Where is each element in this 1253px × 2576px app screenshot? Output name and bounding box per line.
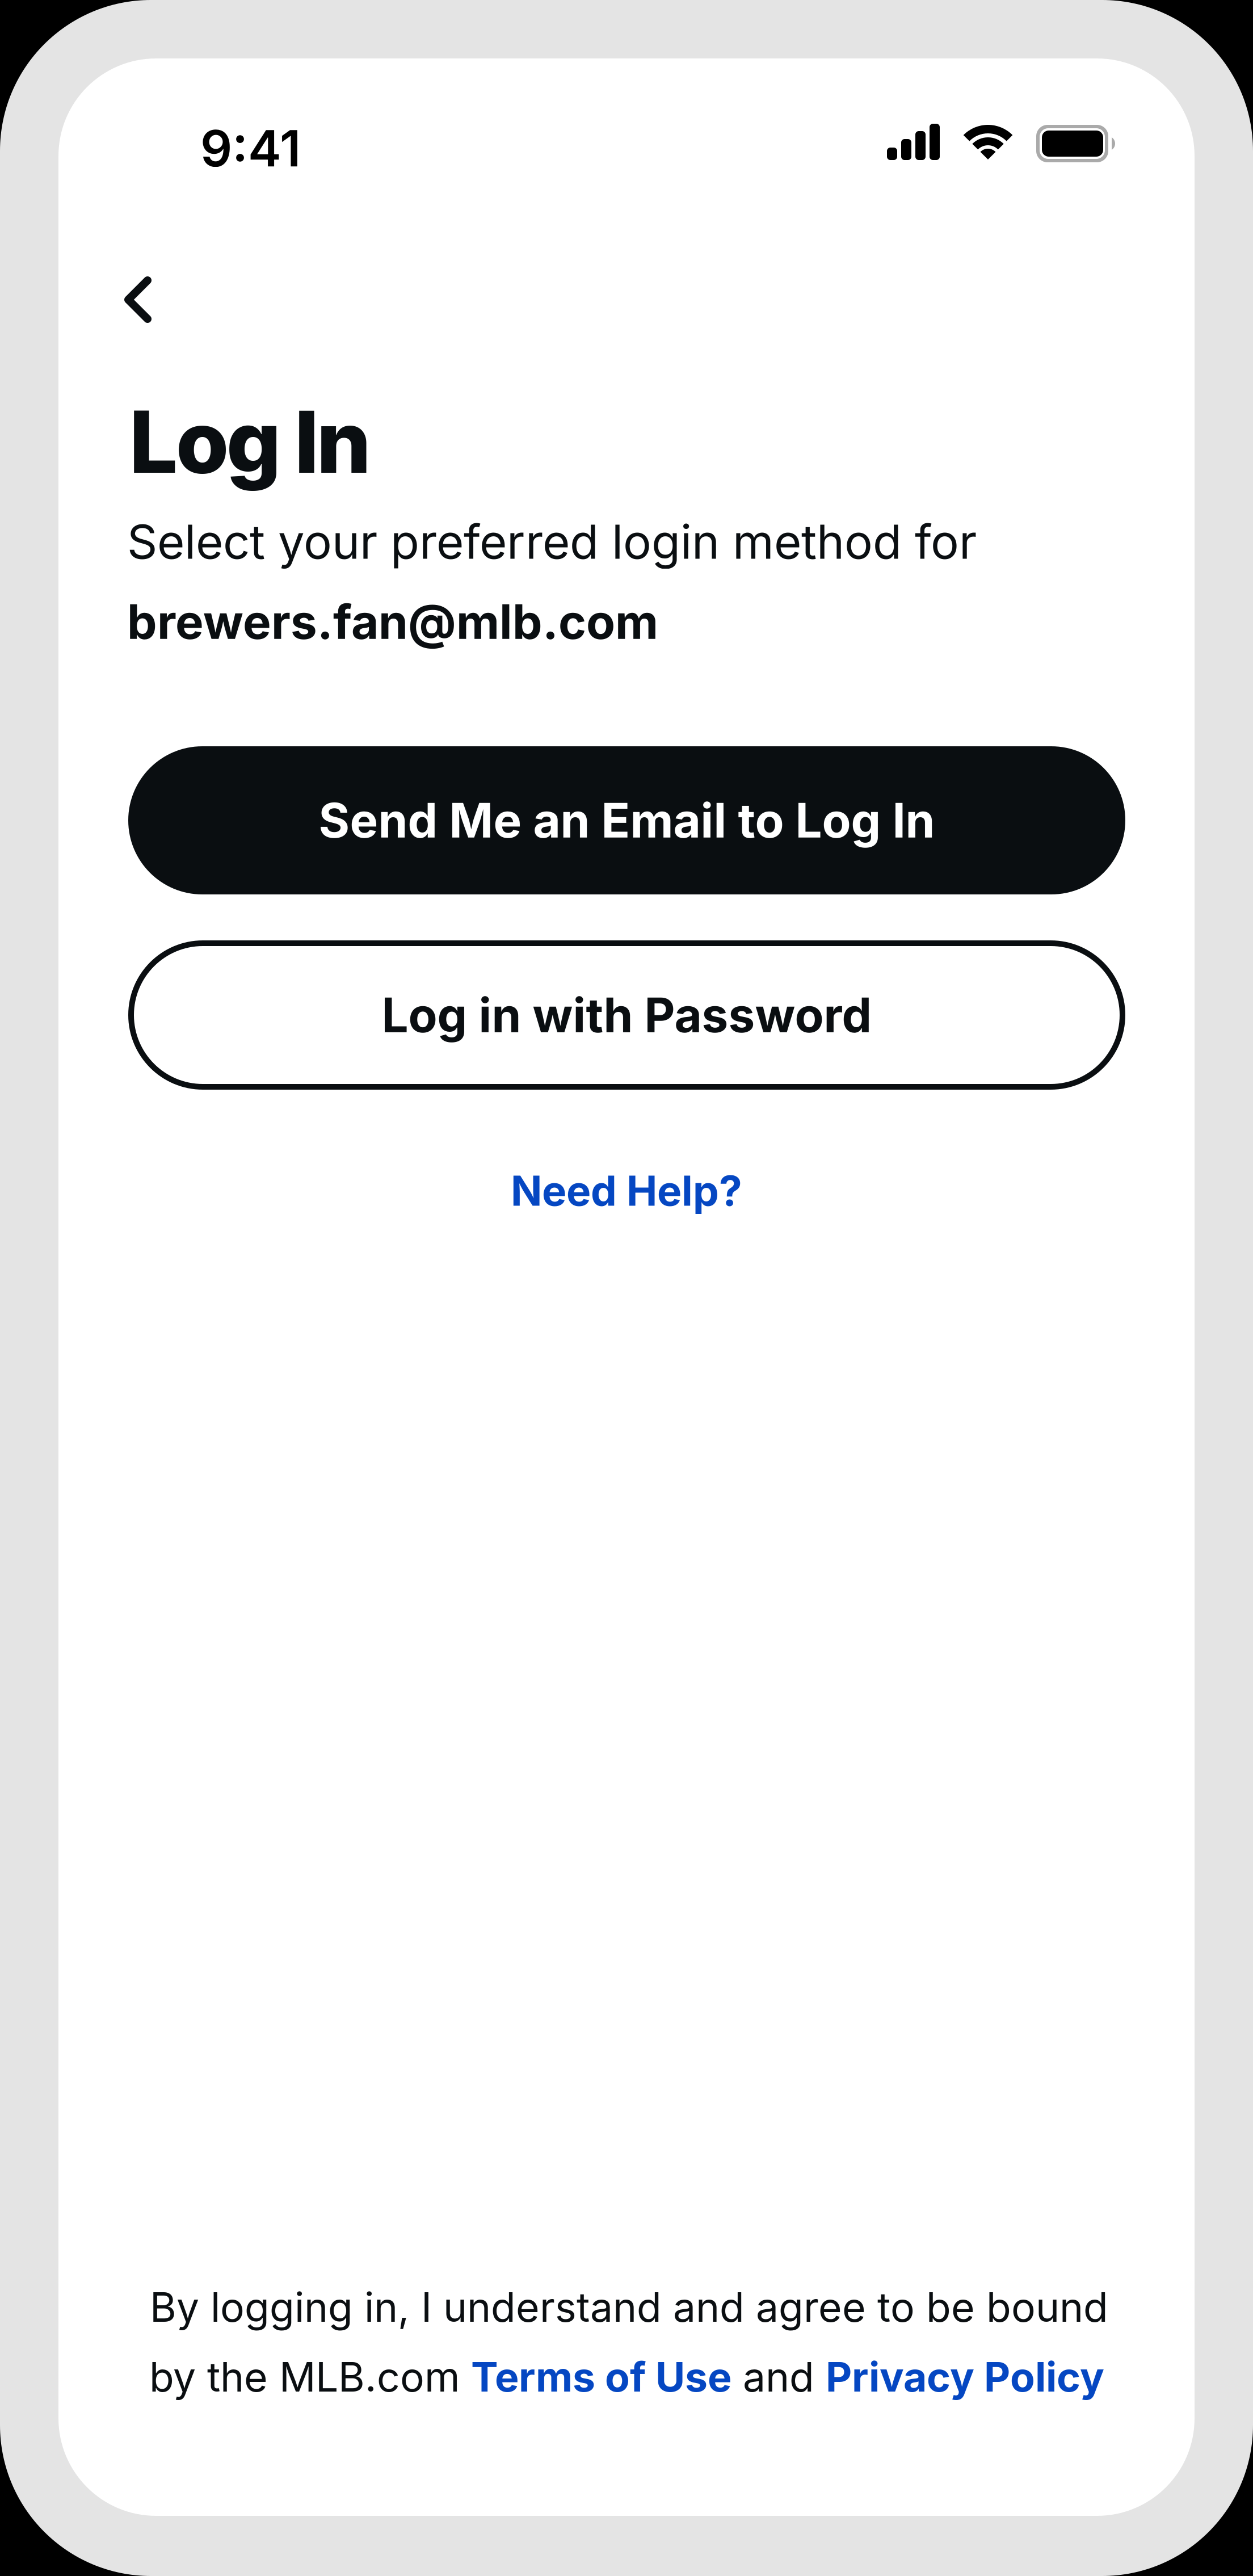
button[interactable]: Back [94,247,192,352]
staticText: Send Me an Email to Log In [319,792,935,849]
button[interactable]: Terms of Use [471,2352,731,2401]
staticText: Log In [131,390,370,493]
staticText: and [731,2352,826,2401]
button[interactable]: Need Help? [479,1154,774,1228]
staticText: by the MLB.com [149,2352,471,2401]
button[interactable]: Privacy Policy [826,2352,1104,2401]
button[interactable]: Log in with Password [128,940,1125,1090]
staticText: Terms of Use [471,2352,731,2401]
staticText: Privacy Policy [826,2352,1104,2401]
staticText: By logging in, I understand and agree to… [150,2283,1108,2332]
staticText: 9:41 [200,118,301,178]
staticText: Need Help? [511,1166,742,1216]
staticText: brewers.fan@mlb.com [127,593,658,650]
staticText: Select your preferred login method for [127,513,977,570]
staticText: Log in with Password [382,986,872,1044]
button[interactable]: Send Me an Email to Log In [128,746,1125,894]
